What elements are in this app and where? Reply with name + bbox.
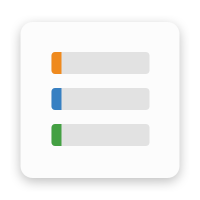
button[interactable]: Third item [51, 124, 149, 146]
button[interactable]: First item [51, 52, 149, 74]
button[interactable]: Second item [51, 88, 149, 110]
